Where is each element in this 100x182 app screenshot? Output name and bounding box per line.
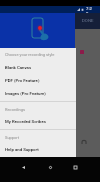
staticText: Images (Pro Feature)	[5, 91, 46, 96]
button[interactable]: My Recorded Scribes	[0, 115, 76, 127]
staticText: Blank Canvas	[5, 65, 32, 70]
button[interactable]: Choose your recording style	[0, 48, 76, 60]
staticText: Recordings	[5, 107, 26, 112]
button[interactable]: Help and Support	[0, 143, 76, 155]
button[interactable]: Images (Pro Feature)	[0, 87, 76, 99]
button[interactable]: Support	[0, 131, 76, 143]
button[interactable]: Recent apps	[65, 160, 85, 174]
button[interactable]: DONE	[81, 14, 95, 26]
button[interactable]: Recordings	[0, 103, 76, 115]
button[interactable]: Blank Canvas	[0, 61, 76, 73]
staticText: Choose your recording style	[5, 52, 55, 57]
button[interactable]: Home	[40, 160, 60, 174]
staticText: Help and Support	[5, 147, 39, 152]
button[interactable]: Back	[13, 160, 33, 174]
staticText: DONE	[82, 18, 94, 23]
staticText: Support	[5, 135, 20, 140]
staticText: 7:29	[86, 6, 94, 13]
staticText: PDF (Pro Feature)	[5, 78, 40, 83]
button[interactable]: PDF (Pro Feature)	[0, 74, 76, 86]
staticText: My Recorded Scribes	[5, 119, 47, 124]
